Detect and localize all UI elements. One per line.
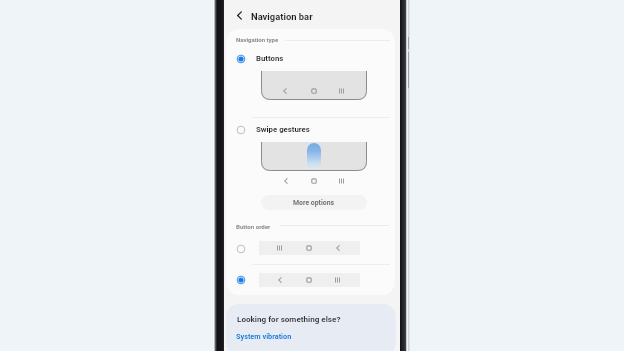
staticText: Navigation bar bbox=[251, 11, 313, 22]
button[interactable]: Not selected bbox=[233, 241, 249, 257]
button[interactable]: Selected bbox=[233, 272, 249, 288]
button[interactable] bbox=[226, 235, 395, 262]
staticText: Buttons bbox=[256, 54, 284, 63]
staticText: More options bbox=[293, 199, 335, 207]
button[interactable] bbox=[226, 118, 395, 140]
button[interactable]: Selected bbox=[233, 51, 249, 67]
staticText: System vibration bbox=[236, 332, 292, 341]
button[interactable] bbox=[226, 47, 395, 69]
staticText: Navigation type bbox=[236, 36, 279, 43]
staticText: Swipe gestures bbox=[256, 125, 310, 134]
button[interactable] bbox=[226, 266, 395, 293]
staticText: Button order bbox=[236, 223, 271, 230]
button[interactable] bbox=[259, 273, 360, 287]
button[interactable]: System vibration bbox=[233, 329, 295, 343]
button[interactable]: Not selected bbox=[233, 122, 249, 138]
button[interactable]: More options bbox=[261, 195, 367, 210]
button[interactable]: Navigation bar bbox=[248, 3, 318, 28]
button[interactable]: Navigate up bbox=[232, 8, 247, 23]
button[interactable] bbox=[259, 241, 360, 255]
staticText: Looking for something else? bbox=[237, 314, 341, 323]
